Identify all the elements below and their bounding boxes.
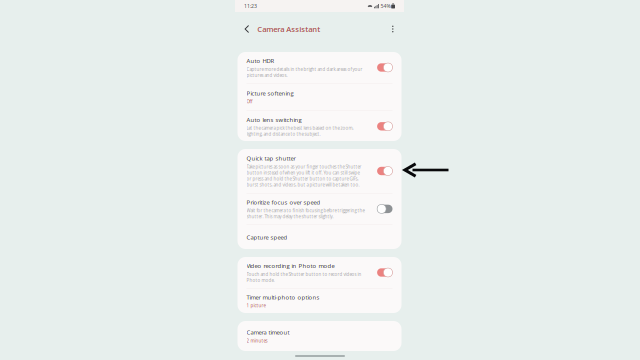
staticText: Camera timeout [246, 328, 289, 336]
staticText: Take pictures as soon as your finger tou… [246, 164, 361, 188]
staticText: Touch and hold the Shutter button to rec… [246, 271, 361, 283]
button[interactable]: Picture softening [237, 83, 401, 110]
staticText: Auto lens switching [246, 116, 301, 124]
button[interactable]: Capture speed [237, 225, 401, 250]
staticText: Wait for the camera to finish focusing b… [246, 208, 364, 220]
button[interactable]: Quick tap shutter [237, 149, 401, 193]
button[interactable]: Timer multi-photo options [237, 288, 401, 313]
button[interactable]: More options [386, 19, 399, 39]
staticText: 54% [380, 2, 390, 10]
button[interactable]: Auto lens switching [237, 111, 401, 142]
staticText: Capture more details in the bright and d… [246, 66, 362, 78]
staticText: Let the camera pick the best lens based … [246, 125, 353, 137]
staticText: Auto HDR [246, 57, 274, 65]
staticText: 11:23 [244, 2, 257, 10]
button[interactable]: Prioritize focus over speed [237, 193, 401, 224]
staticText: 2 minutes [246, 338, 267, 344]
staticText: Quick tap shutter [246, 154, 295, 162]
staticText: Prioritize focus over speed [246, 198, 320, 206]
staticText: Camera Assistant [257, 24, 320, 34]
button[interactable]: Camera timeout [237, 321, 401, 351]
button[interactable]: Video recording in Photo mode [237, 257, 401, 288]
staticText: Off [246, 99, 252, 105]
staticText: Video recording in Photo mode [246, 262, 334, 270]
staticText: Capture speed [246, 233, 287, 241]
staticText: Picture softening [246, 89, 293, 97]
button[interactable]: Auto HDR [237, 52, 401, 83]
staticText: 1 picture [246, 303, 265, 309]
staticText: Timer multi-photo options [246, 293, 319, 301]
button[interactable]: Back [239, 17, 254, 41]
